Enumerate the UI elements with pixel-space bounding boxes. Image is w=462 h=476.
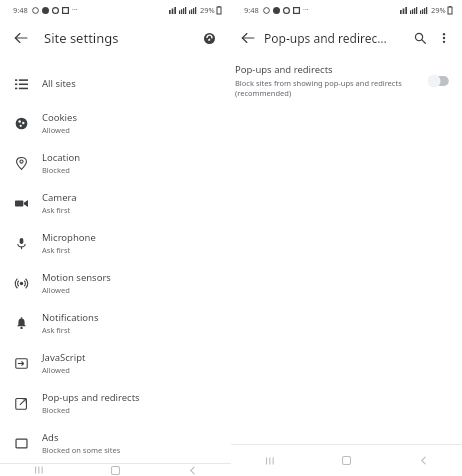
staticText: Location <box>42 151 81 164</box>
button[interactable]: Pop-ups and redirects <box>231 63 462 98</box>
staticText: All sites <box>42 77 76 90</box>
button[interactable]: Recent apps <box>0 464 77 476</box>
button[interactable]: Back <box>8 25 34 51</box>
staticText: Allowed <box>42 125 70 135</box>
staticText: Ask first <box>42 205 71 215</box>
staticText: 9:48 <box>244 5 259 15</box>
staticText: 29% <box>200 5 215 15</box>
button[interactable]: Motion sensors <box>0 263 231 303</box>
staticText: Block sites from showing pop-ups and red… <box>235 78 418 98</box>
staticText: Allowed <box>42 365 70 375</box>
button[interactable]: Home <box>77 464 154 476</box>
button[interactable]: All sites <box>0 63 231 103</box>
staticText: Ask first <box>42 325 71 335</box>
button[interactable]: Back <box>385 445 462 476</box>
staticText: Cookies <box>42 111 77 124</box>
staticText: Ads <box>42 431 59 444</box>
staticText: Allowed <box>42 285 70 295</box>
staticText: ··· <box>72 5 78 15</box>
staticText: ··· <box>303 5 309 15</box>
button[interactable]: Search <box>408 26 432 50</box>
staticText: Blocked on some sites <box>42 445 121 455</box>
button[interactable]: Help <box>197 26 221 50</box>
button[interactable]: Back <box>235 25 261 51</box>
staticText: Notifications <box>42 311 99 324</box>
button[interactable]: Notifications <box>0 303 231 343</box>
button[interactable]: Back <box>154 464 231 476</box>
staticText: Blocked <box>42 405 70 415</box>
staticText: Pop-ups and redirects <box>235 63 333 76</box>
staticText: Blocked <box>42 165 70 175</box>
button[interactable]: JavaScript <box>0 343 231 383</box>
button[interactable]: Microphone <box>0 223 231 263</box>
staticText: Ask first <box>42 245 71 255</box>
button[interactable]: Pop-ups and redirects <box>0 383 231 423</box>
staticText: Pop-ups and redirects <box>42 391 140 404</box>
staticText: Camera <box>42 191 77 204</box>
button[interactable]: Cookies <box>0 103 231 143</box>
staticText: Pop-ups and redirec… <box>264 30 387 46</box>
staticText: JavaScript <box>42 351 86 364</box>
staticText: 29% <box>431 5 446 15</box>
staticText: Microphone <box>42 231 96 244</box>
button[interactable]: Recent apps <box>231 445 308 476</box>
staticText: Motion sensors <box>42 271 111 284</box>
button[interactable]: Ads <box>0 423 231 463</box>
button[interactable]: More options <box>432 26 456 50</box>
staticText: Site settings <box>44 29 119 47</box>
button[interactable]: Camera <box>0 183 231 223</box>
button[interactable]: Location <box>0 143 231 183</box>
staticText: 9:48 <box>13 5 28 15</box>
button[interactable]: Home <box>308 445 385 476</box>
